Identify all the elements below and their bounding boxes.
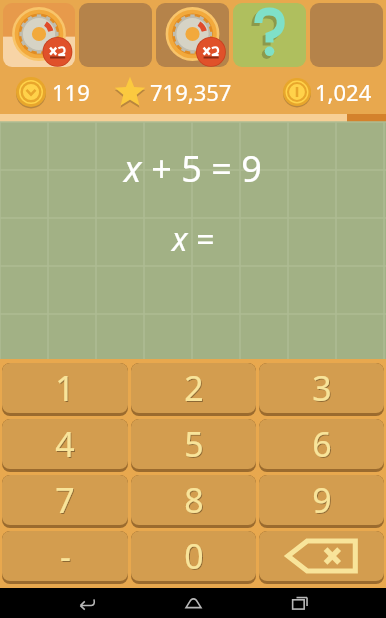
staticText: 0 bbox=[185, 534, 205, 580]
button[interactable]: 5 bbox=[131, 419, 256, 469]
staticText: 6 bbox=[312, 421, 332, 467]
staticText: + 5 = 9 bbox=[142, 144, 262, 193]
button[interactable]: Recent apps bbox=[280, 588, 320, 618]
staticText: 1 bbox=[55, 365, 75, 411]
staticText: 9 bbox=[313, 478, 333, 524]
button[interactable]: Mystery power-up bbox=[233, 3, 306, 67]
staticText: 0 bbox=[184, 533, 204, 579]
staticText: 7 bbox=[56, 478, 76, 524]
staticText: 6 bbox=[313, 422, 333, 468]
staticText: 9 bbox=[312, 477, 332, 523]
button[interactable]: - bbox=[2, 531, 128, 581]
button[interactable]: Home bbox=[173, 588, 213, 618]
staticText: - bbox=[61, 534, 72, 580]
button[interactable]: 0 bbox=[131, 531, 256, 581]
staticText: 119 bbox=[52, 77, 90, 107]
staticText: x bbox=[172, 217, 188, 261]
button[interactable]: Power-up double bbox=[156, 3, 229, 67]
staticText: 2 bbox=[184, 365, 204, 411]
button[interactable]: Back bbox=[67, 588, 107, 618]
staticText: 7 bbox=[55, 477, 75, 523]
button[interactable]: Power-up double, active bbox=[3, 3, 75, 67]
staticText: 8 bbox=[184, 477, 204, 523]
staticText: = bbox=[188, 217, 215, 261]
button[interactable]: Empty power-up slot bbox=[310, 3, 383, 67]
staticText: - bbox=[60, 533, 71, 579]
button[interactable]: 1 bbox=[2, 363, 128, 413]
staticText: 5 bbox=[185, 422, 205, 468]
staticText: 3 bbox=[312, 365, 332, 411]
button[interactable]: 3 bbox=[259, 363, 384, 413]
button[interactable]: Backspace bbox=[259, 531, 384, 581]
button[interactable]: 2 bbox=[131, 363, 256, 413]
staticText: 1 bbox=[56, 366, 76, 412]
button[interactable]: 7 bbox=[2, 475, 128, 525]
staticText: 2 bbox=[185, 366, 205, 412]
staticText: x bbox=[124, 144, 142, 193]
button[interactable]: 4 bbox=[2, 419, 128, 469]
button[interactable]: 8 bbox=[131, 475, 256, 525]
staticText: 4 bbox=[56, 422, 76, 468]
button[interactable]: 9 bbox=[259, 475, 384, 525]
staticText: 1,024 bbox=[315, 77, 372, 107]
staticText: 3 bbox=[313, 366, 333, 412]
button[interactable]: Empty power-up slot bbox=[79, 3, 152, 67]
staticText: 8 bbox=[185, 478, 205, 524]
staticText: 4 bbox=[55, 421, 75, 467]
button[interactable]: 6 bbox=[259, 419, 384, 469]
staticText: 5 bbox=[184, 421, 204, 467]
staticText: 719,357 bbox=[150, 77, 232, 107]
